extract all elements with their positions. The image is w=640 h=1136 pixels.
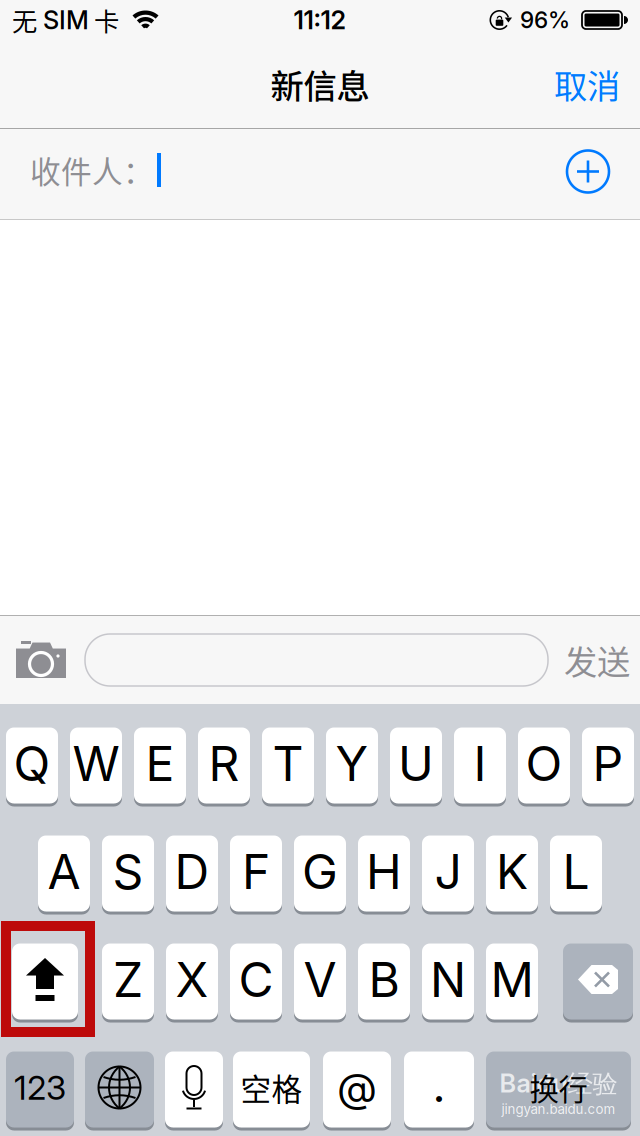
button[interactable]: [582, 726, 634, 805]
button[interactable]: [422, 942, 474, 1021]
staticText: R: [208, 734, 239, 793]
button[interactable]: [134, 726, 186, 805]
button[interactable]: [294, 942, 346, 1021]
staticText: A: [47, 842, 80, 901]
button[interactable]: 取消: [538, 46, 636, 122]
button[interactable]: [486, 942, 538, 1021]
button[interactable]: Add contact: [557, 143, 619, 205]
staticText: 取消: [554, 60, 620, 108]
staticText: 11:12: [293, 5, 346, 35]
staticText: F: [242, 842, 270, 901]
button[interactable]: [102, 942, 154, 1021]
staticText: 换行: [529, 1066, 587, 1109]
staticText: .: [432, 1058, 445, 1113]
staticText: C: [238, 950, 273, 1009]
button[interactable]: [294, 834, 346, 913]
button[interactable]: [358, 834, 410, 913]
staticText: P: [592, 734, 623, 793]
button[interactable]: Shift: [12, 942, 78, 1021]
button[interactable]: Delete: [563, 942, 633, 1021]
staticText: K: [496, 842, 528, 901]
button[interactable]: [6, 726, 58, 805]
staticText: B: [368, 950, 399, 1009]
button[interactable]: [518, 726, 570, 805]
button[interactable]: Camera: [12, 630, 70, 690]
button[interactable]: 发送: [556, 630, 638, 690]
staticText: 收件人：: [30, 148, 154, 192]
staticText: E: [145, 734, 174, 793]
staticText: N: [430, 950, 466, 1009]
button[interactable]: [233, 1050, 310, 1129]
staticText: 新信息: [270, 60, 369, 108]
staticText: S: [112, 842, 143, 901]
staticText: Y: [335, 734, 368, 793]
button[interactable]: [230, 834, 282, 913]
button[interactable]: [358, 942, 410, 1021]
staticText: U: [398, 734, 434, 793]
staticText: T: [272, 734, 303, 793]
staticText: X: [175, 950, 208, 1009]
staticText: D: [174, 842, 209, 901]
staticText: L: [562, 842, 589, 901]
staticText: Baidu经验: [499, 1068, 617, 1100]
staticText: M: [490, 950, 533, 1009]
staticText: 发送: [564, 636, 630, 684]
staticText: @: [337, 1063, 376, 1112]
button[interactable]: [486, 834, 538, 913]
staticText: SIM: [43, 5, 89, 35]
button[interactable]: [38, 834, 90, 913]
button[interactable]: [262, 726, 314, 805]
staticText: 卡: [94, 2, 119, 38]
button[interactable]: [102, 834, 154, 913]
staticText: O: [525, 734, 562, 793]
staticText: 96%: [520, 6, 570, 34]
button[interactable]: [70, 726, 122, 805]
button[interactable]: [323, 1050, 391, 1129]
button[interactable]: Message text field: [85, 634, 548, 686]
staticText: 无: [12, 2, 37, 38]
staticText: V: [303, 950, 336, 1009]
staticText: 空格: [240, 1065, 302, 1110]
staticText: jingyan.baidu.com: [501, 1101, 615, 1117]
button[interactable]: [166, 942, 218, 1021]
button[interactable]: [230, 942, 282, 1021]
button[interactable]: [422, 834, 474, 913]
staticText: I: [473, 734, 486, 793]
staticText: J: [434, 842, 461, 901]
button[interactable]: Switch keyboard: [85, 1050, 154, 1129]
button[interactable]: [550, 834, 602, 913]
button[interactable]: [326, 726, 378, 805]
button[interactable]: [198, 726, 250, 805]
button[interactable]: [390, 726, 442, 805]
button[interactable]: Numbers: [6, 1050, 74, 1129]
button[interactable]: [486, 1050, 631, 1129]
staticText: G: [302, 842, 338, 901]
staticText: Z: [113, 950, 143, 1009]
button[interactable]: Dictation: [165, 1050, 223, 1129]
button[interactable]: [404, 1050, 474, 1129]
button[interactable]: [454, 726, 506, 805]
staticText: Q: [13, 734, 50, 793]
staticText: 123: [14, 1067, 66, 1108]
staticText: H: [366, 842, 402, 901]
button[interactable]: [166, 834, 218, 913]
staticText: W: [72, 734, 119, 793]
